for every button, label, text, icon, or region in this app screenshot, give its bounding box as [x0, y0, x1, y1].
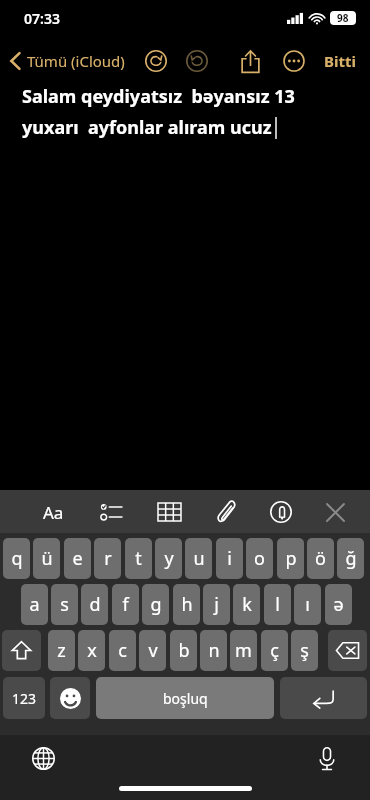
- staticText: f: [122, 592, 129, 617]
- button[interactable]: Aa: [34, 493, 72, 531]
- button[interactable]: u: [185, 538, 212, 579]
- button[interactable]: j: [203, 584, 230, 625]
- button[interactable]: ş: [291, 630, 318, 671]
- button[interactable]: More options: [278, 45, 310, 77]
- staticText: ö: [315, 546, 326, 571]
- button[interactable]: Bitti: [324, 51, 356, 71]
- button[interactable]: k: [233, 584, 260, 625]
- button[interactable]: i: [216, 538, 243, 579]
- button[interactable]: Tümü (iCloud): [10, 51, 125, 71]
- button[interactable]: Attach: [208, 493, 246, 531]
- staticText: ç: [270, 638, 279, 663]
- staticText: x: [87, 638, 97, 663]
- staticText: i: [227, 546, 232, 571]
- staticText: s: [60, 592, 69, 617]
- staticText: y: [164, 546, 174, 571]
- staticText: 123: [12, 689, 37, 708]
- staticText: t: [135, 546, 142, 571]
- button[interactable]: ç: [261, 630, 288, 671]
- button[interactable]: n: [200, 630, 227, 671]
- button[interactable]: b: [170, 630, 197, 671]
- staticText: boşluq: [163, 689, 208, 708]
- button[interactable]: Backspace: [328, 630, 367, 671]
- staticText: ş: [300, 638, 309, 663]
- button[interactable]: m: [230, 630, 257, 671]
- staticText: 07:33: [24, 9, 60, 28]
- staticText: l: [275, 592, 280, 617]
- button[interactable]: ı: [294, 584, 321, 625]
- staticText: yuxarı ayfonlar alıram ucuz: [22, 115, 272, 140]
- staticText: r: [104, 546, 112, 571]
- button[interactable]: r: [94, 538, 121, 579]
- button[interactable]: Shift: [2, 630, 41, 671]
- staticText: n: [208, 638, 220, 663]
- button[interactable]: z: [48, 630, 75, 671]
- button[interactable]: a: [21, 584, 48, 625]
- staticText: ü: [41, 546, 53, 571]
- button[interactable]: x: [78, 630, 105, 671]
- staticText: p: [285, 546, 297, 571]
- button[interactable]: t: [125, 538, 152, 579]
- staticText: z: [57, 638, 66, 663]
- staticText: b: [178, 638, 190, 663]
- button[interactable]: e: [64, 538, 91, 579]
- button[interactable]: Table: [150, 493, 188, 531]
- staticText: o: [254, 546, 265, 571]
- button[interactable]: ö: [307, 538, 334, 579]
- staticText: v: [148, 638, 158, 663]
- staticText: g: [150, 592, 162, 617]
- staticText: ı: [305, 592, 310, 617]
- button[interactable]: Return: [280, 677, 367, 719]
- button[interactable]: g: [142, 584, 169, 625]
- button[interactable]: v: [139, 630, 166, 671]
- button[interactable]: f: [112, 584, 139, 625]
- button[interactable]: boşluq: [96, 677, 274, 719]
- button[interactable]: Undo: [141, 46, 171, 76]
- button[interactable]: q: [3, 538, 30, 579]
- staticText: a: [29, 592, 40, 617]
- button[interactable]: Close keyboard: [316, 493, 354, 531]
- staticText: Salam qeydiyatsız bəyansız 13: [22, 84, 295, 109]
- staticText: ə: [333, 592, 344, 617]
- button[interactable]: ü: [33, 538, 60, 579]
- button[interactable]: o: [246, 538, 273, 579]
- button[interactable]: y: [155, 538, 182, 579]
- staticText: c: [118, 638, 127, 663]
- staticText: 98: [337, 11, 349, 25]
- staticText: Aa: [43, 501, 64, 524]
- button[interactable]: p: [277, 538, 304, 579]
- button[interactable]: ğ: [337, 538, 364, 579]
- button[interactable]: Markup: [262, 493, 300, 531]
- button[interactable]: d: [81, 584, 108, 625]
- button[interactable]: 123: [3, 677, 45, 719]
- staticText: m: [235, 638, 252, 663]
- staticText: d: [89, 592, 101, 617]
- staticText: e: [72, 546, 83, 571]
- staticText: u: [193, 546, 205, 571]
- button[interactable]: h: [173, 584, 200, 625]
- button[interactable]: Change keyboard language: [26, 741, 60, 775]
- staticText: ğ: [345, 546, 357, 571]
- staticText: Tümü (iCloud): [27, 51, 125, 71]
- button[interactable]: ə: [325, 584, 352, 625]
- staticText: h: [181, 592, 193, 617]
- button[interactable]: l: [264, 584, 291, 625]
- button[interactable]: Redo: [182, 46, 212, 76]
- button[interactable]: Checklist: [92, 493, 130, 531]
- button[interactable]: Dictate: [310, 741, 344, 775]
- button[interactable]: Share: [234, 45, 266, 77]
- staticText: q: [11, 546, 23, 571]
- staticText: j: [214, 592, 219, 617]
- button[interactable]: c: [109, 630, 136, 671]
- button[interactable]: s: [51, 584, 78, 625]
- staticText: k: [242, 592, 252, 617]
- button[interactable]: Emoji: [50, 677, 90, 719]
